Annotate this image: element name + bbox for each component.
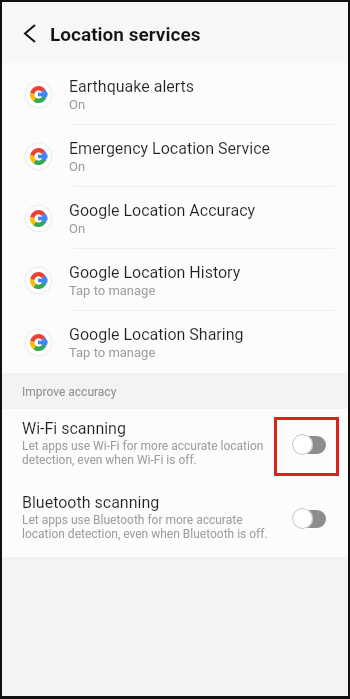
button[interactable]: Wi-Fi scanning: [2, 409, 348, 483]
button[interactable]: Google Location History: [2, 249, 348, 311]
button[interactable]: Google Location Sharing: [2, 311, 348, 373]
staticText: Earthquake alerts: [69, 77, 195, 96]
staticText: Emergency Location Service: [69, 139, 271, 158]
staticText: Improve accuracy: [22, 385, 117, 399]
staticText: Tap to manage: [69, 345, 156, 360]
staticText: Google Location Sharing: [69, 325, 244, 344]
button[interactable]: Earthquake alerts: [2, 63, 348, 125]
button[interactable]: Emergency Location Service: [2, 125, 348, 187]
staticText: Let apps use Wi-Fi for more accurate loc…: [22, 439, 264, 467]
staticText: Tap to manage: [69, 283, 156, 298]
staticText: Bluetooth scanning: [22, 493, 160, 512]
button[interactable]: Bluetooth scanning: [2, 483, 348, 557]
staticText: On: [69, 159, 86, 174]
staticText: Google Location Accuracy: [69, 201, 256, 220]
staticText: On: [69, 97, 86, 112]
staticText: Google Location History: [69, 263, 241, 282]
button[interactable]: Bluetooth scanning switch, off: [292, 508, 326, 529]
staticText: Wi-Fi scanning: [22, 419, 126, 438]
button[interactable]: Navigate up: [2, 7, 50, 59]
staticText: Location services: [50, 23, 201, 45]
staticText: On: [69, 221, 86, 236]
button[interactable]: Google Location Accuracy: [2, 187, 348, 249]
staticText: Let apps use Bluetooth for more accurate…: [22, 513, 268, 541]
button[interactable]: Wi-Fi scanning switch, off: [292, 434, 326, 455]
